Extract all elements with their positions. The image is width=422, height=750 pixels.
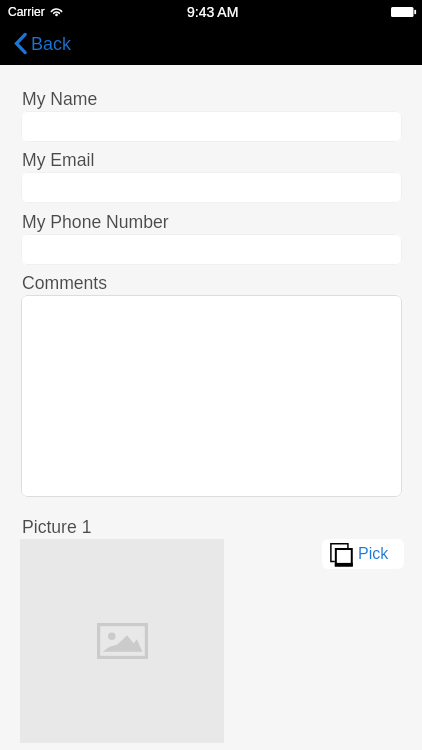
- staticText: 9:43 AM: [187, 4, 239, 20]
- button[interactable]: Back: [14, 24, 72, 63]
- button[interactable]: Pick: [322, 539, 404, 569]
- button[interactable]: Picture 1 preview: [20, 539, 224, 743]
- staticText: Pick: [358, 545, 389, 563]
- staticText: Back: [31, 34, 72, 54]
- staticText: Picture 1: [22, 517, 92, 537]
- button[interactable]: [21, 234, 402, 265]
- staticText: My Phone Number: [22, 212, 169, 232]
- button[interactable]: [21, 111, 402, 142]
- staticText: Carrier: [8, 5, 45, 18]
- staticText: Comments: [22, 273, 108, 293]
- staticText: My Email: [22, 150, 95, 170]
- button[interactable]: [21, 172, 402, 203]
- button[interactable]: [21, 295, 402, 497]
- staticText: My Name: [22, 89, 98, 109]
